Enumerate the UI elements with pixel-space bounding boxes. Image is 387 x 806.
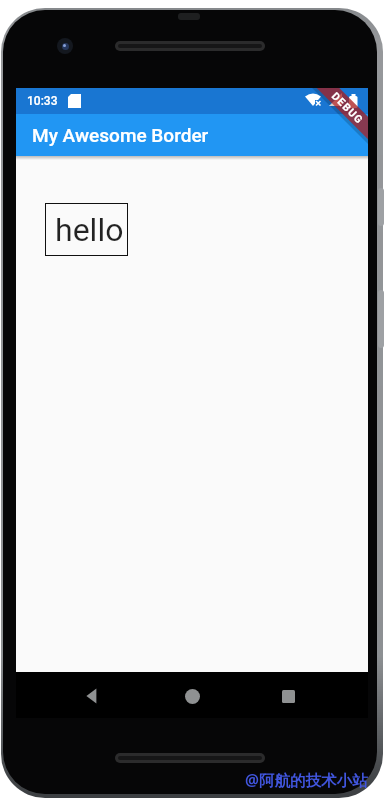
button[interactable]: My Awesome Border bbox=[16, 114, 368, 156]
staticText: My Awesome Border bbox=[32, 124, 209, 146]
staticText: 10:33 bbox=[27, 94, 58, 108]
staticText: @阿航的技术小站 bbox=[245, 769, 368, 790]
button[interactable] bbox=[273, 681, 303, 711]
button[interactable] bbox=[76, 681, 106, 711]
staticText: DEBUG bbox=[330, 90, 366, 126]
button[interactable]: hello bbox=[45, 203, 128, 256]
staticText: hello bbox=[55, 211, 124, 249]
button[interactable] bbox=[177, 681, 207, 711]
